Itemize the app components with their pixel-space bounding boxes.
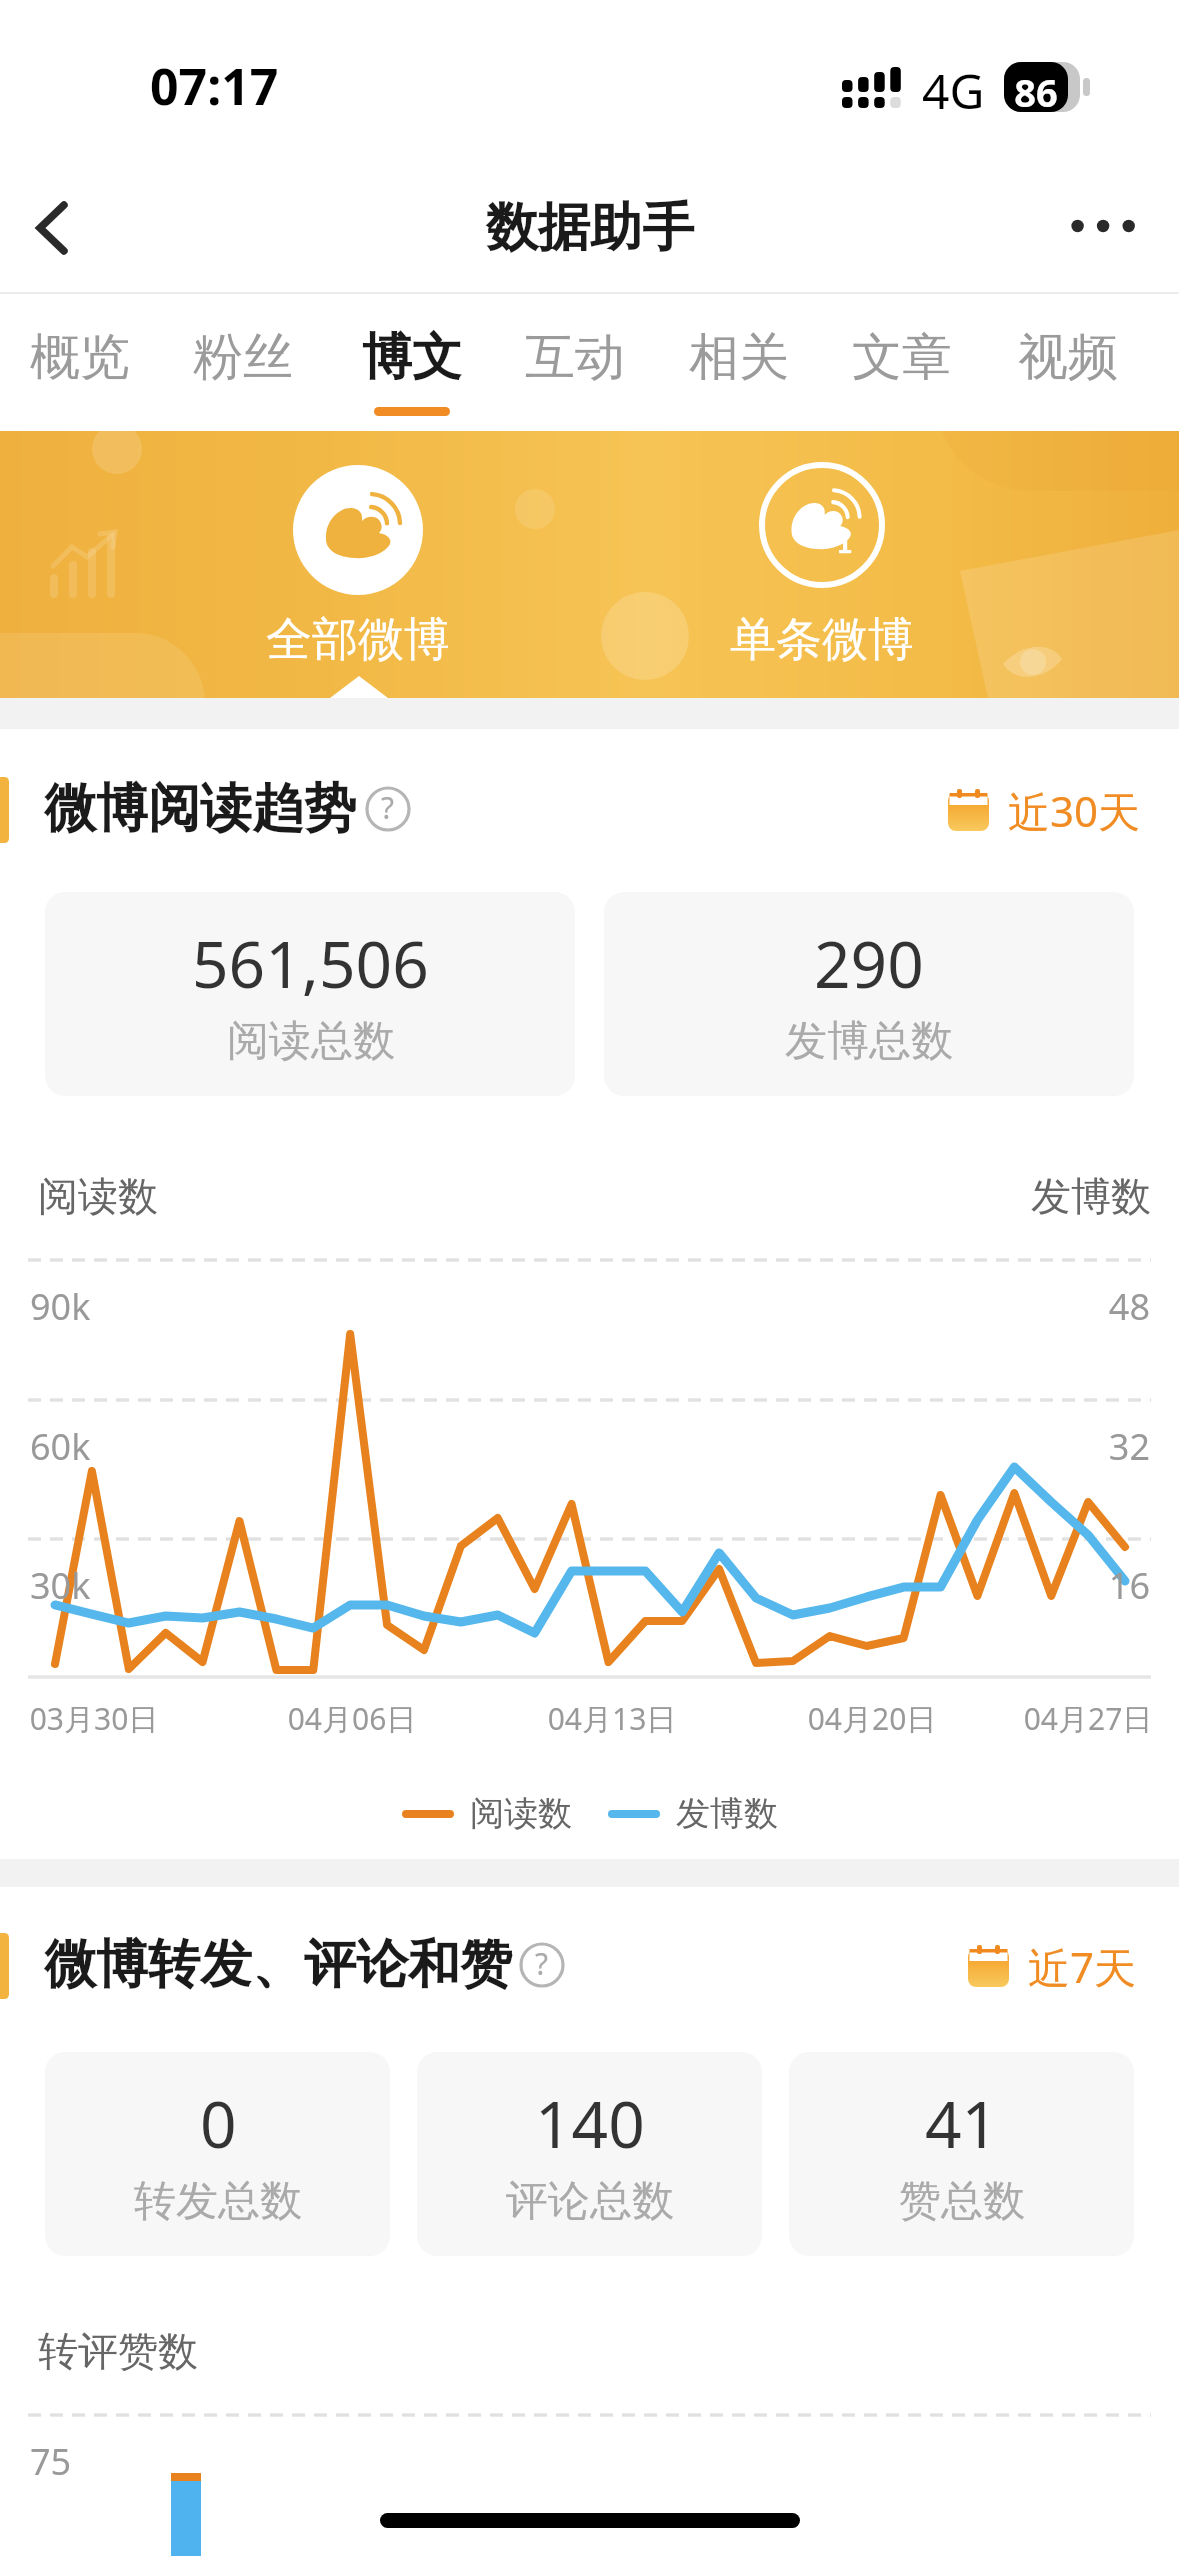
staticText: 290 xyxy=(814,920,924,1007)
staticText: 75 xyxy=(30,2437,72,2486)
button[interactable] xyxy=(744,462,900,686)
button[interactable]: 视频 xyxy=(986,296,1150,431)
button[interactable]: 140 xyxy=(417,2052,762,2256)
staticText: 32 xyxy=(1000,1422,1150,1471)
staticText: 赞总数 xyxy=(899,2175,1025,2228)
staticText: 发博数 xyxy=(676,1792,778,1835)
staticText: 博文 xyxy=(362,326,462,389)
staticText: 近30天 xyxy=(1008,782,1141,839)
button[interactable]: Help xyxy=(519,1942,565,1988)
staticText: 阅读数 xyxy=(470,1792,572,1835)
button[interactable]: 290 xyxy=(604,892,1134,1096)
button[interactable]: 文章 xyxy=(820,296,984,431)
button[interactable]: 近7天 xyxy=(968,1938,1137,1995)
staticText: 阅读总数 xyxy=(227,1015,395,1068)
button[interactable]: Help xyxy=(365,786,411,832)
button[interactable]: 0 xyxy=(45,2052,390,2256)
staticText: 粉丝 xyxy=(193,326,293,389)
staticText: 文章 xyxy=(852,326,952,389)
button[interactable]: 阅读数 xyxy=(402,1792,572,1835)
staticText: 概览 xyxy=(30,326,130,389)
staticText: 4G xyxy=(922,58,985,123)
button[interactable]: 粉丝 xyxy=(161,296,325,431)
staticText: 转评赞数 xyxy=(38,2326,198,2376)
staticText: 微博阅读趋势 xyxy=(44,776,356,842)
staticText: 90k xyxy=(30,1282,91,1331)
staticText: 0 xyxy=(200,2080,237,2167)
staticText: 近7天 xyxy=(1028,1938,1137,1995)
button[interactable]: More options xyxy=(1046,176,1156,268)
staticText: 互动 xyxy=(525,326,625,389)
staticText: 数据助手 xyxy=(486,195,694,261)
button[interactable]: 互动 xyxy=(493,296,657,431)
button[interactable]: 发博数 xyxy=(608,1792,778,1835)
staticText: 07:17 xyxy=(150,52,279,120)
staticText: 48 xyxy=(1000,1282,1150,1331)
button[interactable]: 41 xyxy=(789,2052,1134,2256)
staticText: 发博数 xyxy=(1031,1171,1151,1221)
staticText: 单条微博 xyxy=(662,611,982,669)
staticText: 全部微博 xyxy=(198,611,518,669)
button[interactable]: 相关 xyxy=(657,296,821,431)
staticText: 140 xyxy=(535,2080,645,2167)
staticText: 30k xyxy=(30,1561,91,1610)
staticText: 60k xyxy=(30,1422,91,1471)
button[interactable]: 近30天 xyxy=(948,782,1141,839)
staticText: 04月13日 xyxy=(502,1698,722,1739)
button[interactable]: 博文 xyxy=(330,296,494,431)
staticText: 41 xyxy=(925,2080,999,2167)
staticText: 相关 xyxy=(689,326,789,389)
staticText: 86 xyxy=(1004,66,1068,118)
staticText: 视频 xyxy=(1018,326,1118,389)
staticText: 微博转发、评论和赞 xyxy=(44,1932,512,1998)
staticText: 04月20日 xyxy=(762,1698,982,1739)
staticText: ? xyxy=(535,1943,549,1984)
staticText: 评论总数 xyxy=(506,2175,674,2228)
staticText: 阅读数 xyxy=(38,1171,158,1221)
staticText: 16 xyxy=(1000,1561,1150,1610)
staticText: 04月06日 xyxy=(242,1698,462,1739)
button[interactable]: Back xyxy=(16,178,110,272)
button[interactable]: 概览 xyxy=(0,296,162,431)
staticText: 561,506 xyxy=(192,920,429,1007)
staticText: 发博总数 xyxy=(785,1015,953,1068)
button[interactable]: 561,506 xyxy=(45,892,575,1096)
staticText: 03月30日 xyxy=(0,1698,204,1739)
staticText: 04月27日 xyxy=(978,1698,1179,1739)
staticText: ? xyxy=(381,787,395,828)
staticText: 转发总数 xyxy=(134,2175,302,2228)
button[interactable] xyxy=(280,465,436,689)
